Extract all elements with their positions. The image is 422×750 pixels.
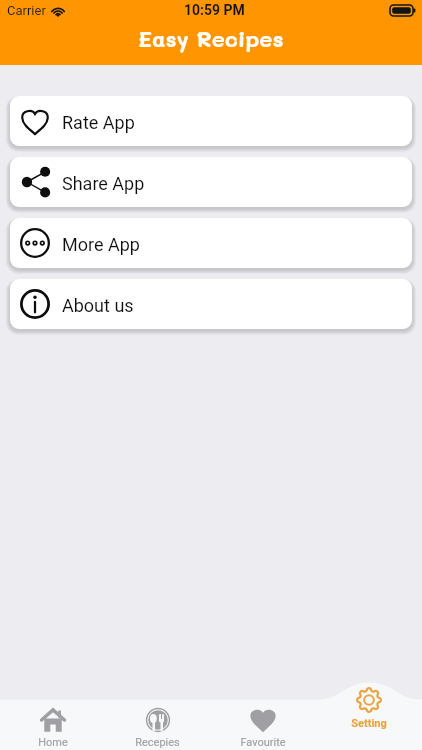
- staticText: About us: [62, 295, 134, 316]
- button[interactable]: About us: [10, 279, 412, 329]
- button[interactable]: More App: [10, 218, 412, 268]
- button[interactable]: Setting: [316, 672, 422, 750]
- staticText: Recepies: [135, 736, 180, 749]
- staticText: Rate App: [62, 112, 135, 133]
- button[interactable]: Recepies: [105, 672, 210, 750]
- button[interactable]: Favourite: [210, 672, 316, 750]
- button[interactable]: Home: [0, 672, 105, 750]
- other: Favourite: [250, 707, 276, 733]
- other: Recepies: [145, 707, 171, 733]
- staticText: Carrier: [7, 3, 46, 18]
- button[interactable]: Share App: [10, 157, 412, 207]
- staticText: Setting: [351, 717, 387, 730]
- other: Setting: [356, 687, 382, 713]
- other: Home: [40, 707, 66, 733]
- staticText: Favourite: [240, 736, 286, 749]
- button[interactable]: Rate App: [10, 96, 412, 146]
- staticText: 10:59 PM: [184, 2, 245, 18]
- staticText: More App: [62, 234, 140, 255]
- staticText: Home: [38, 736, 68, 749]
- staticText: Easy Recipes: [138, 24, 284, 53]
- staticText: Share App: [62, 173, 145, 194]
